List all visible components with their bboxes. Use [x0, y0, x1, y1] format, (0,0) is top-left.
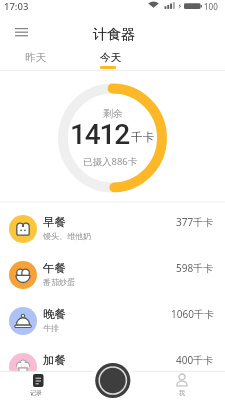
staticText: 早餐: [43, 215, 66, 229]
staticText: 加餐: [43, 353, 66, 367]
staticText: 加餐: [43, 353, 66, 367]
button[interactable]: 昨天: [16, 48, 53, 68]
staticText: 400千卡: [176, 353, 214, 367]
staticText: 598千卡: [176, 261, 214, 275]
staticText: 我: [179, 389, 185, 397]
staticText: 今天: [100, 51, 121, 64]
button[interactable]: 晚餐: [0, 298, 225, 344]
button[interactable]: 我: [168, 372, 196, 400]
staticText: 昨天: [25, 51, 46, 64]
staticText: 晚餐: [43, 307, 66, 321]
staticText: 1412: [70, 118, 129, 151]
staticText: 今天: [100, 51, 121, 64]
button[interactable]: [10, 24, 32, 44]
button[interactable]: 记录: [24, 372, 52, 400]
button[interactable]: [95, 363, 131, 399]
staticText: 番茄炒蛋: [43, 277, 75, 287]
staticText: 记录: [30, 389, 42, 397]
staticText: 牛排: [43, 323, 59, 333]
staticText: 剩余: [103, 107, 123, 120]
staticText: 100: [204, 1, 218, 12]
button[interactable]: 午餐: [0, 252, 225, 298]
staticText: 午餐: [43, 261, 66, 275]
staticText: 千卡: [131, 130, 154, 144]
button[interactable]: 早餐: [0, 206, 225, 252]
staticText: 已摄入886卡: [83, 155, 138, 168]
button[interactable]: 今天: [91, 48, 125, 69]
staticText: 馒头、维他奶: [43, 231, 91, 241]
staticText: 计食器: [93, 26, 135, 44]
staticText: 晚餐: [43, 307, 66, 321]
staticText: 377千卡: [176, 215, 214, 229]
staticText: 午餐: [43, 261, 66, 275]
button[interactable]: 加餐: [0, 344, 225, 390]
staticText: 1060千卡: [171, 307, 214, 321]
staticText: 早餐: [43, 215, 66, 229]
staticText: 17:03: [4, 0, 29, 13]
staticText: 计食器: [93, 26, 135, 44]
